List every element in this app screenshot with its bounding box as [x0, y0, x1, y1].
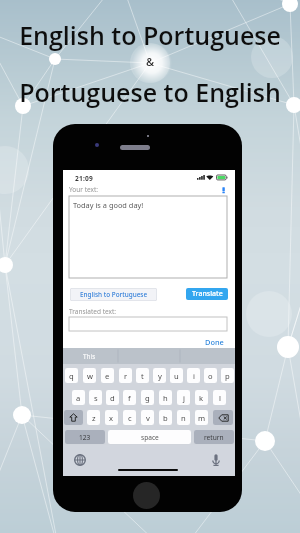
staticText: c [128, 413, 132, 423]
staticText: i [193, 371, 195, 381]
button[interactable]: Today is a good day! [69, 196, 227, 278]
button[interactable]: n [177, 410, 190, 425]
staticText: s [94, 393, 98, 403]
staticText: Portuguese to English [0, 75, 300, 109]
button[interactable]: Translate [186, 288, 228, 300]
button[interactable] [69, 317, 227, 331]
button[interactable]: English to Portuguese [70, 288, 157, 301]
staticText: This [83, 352, 96, 361]
button[interactable]: a [72, 390, 85, 405]
staticText: English to Portuguese [0, 18, 300, 52]
staticText: t [141, 371, 144, 381]
button[interactable]: s [89, 390, 102, 405]
staticText: q [69, 371, 74, 381]
staticText: z [92, 413, 96, 423]
button[interactable]: c [123, 410, 136, 425]
staticText: b [163, 413, 168, 423]
staticText: f [128, 393, 131, 403]
button[interactable]: j [177, 390, 190, 405]
button[interactable]: e [101, 368, 114, 383]
staticText: p [225, 371, 230, 381]
staticText: space [141, 433, 159, 442]
staticText: & [0, 54, 300, 69]
staticText: Translated text: [69, 307, 117, 316]
button[interactable]: d [106, 390, 119, 405]
staticText: g [145, 393, 150, 403]
staticText: 21:09 [75, 174, 93, 183]
staticText: Translate [192, 289, 223, 299]
button[interactable]: Change keyboard [74, 454, 86, 466]
staticText: e [105, 371, 110, 381]
staticText: k [199, 393, 204, 403]
staticText: n [181, 413, 186, 423]
button[interactable]: Done [203, 336, 226, 348]
staticText: y [158, 371, 162, 381]
staticText: 123 [79, 433, 91, 442]
button[interactable]: return [194, 430, 234, 444]
staticText: Done [205, 337, 224, 347]
button[interactable]: Backspace [213, 410, 233, 425]
button[interactable]: z [87, 410, 100, 425]
staticText: English to Portuguese [80, 290, 148, 299]
staticText: Today is a good day! [73, 200, 144, 210]
button[interactable]: q [65, 368, 78, 383]
staticText: r [124, 371, 128, 381]
button[interactable]: x [105, 410, 118, 425]
button[interactable]: g [141, 390, 154, 405]
button[interactable]: k [195, 390, 208, 405]
button[interactable]: i [187, 368, 200, 383]
staticText: m [198, 413, 206, 423]
button[interactable]: v [141, 410, 154, 425]
button[interactable]: u [170, 368, 183, 383]
staticText: j [183, 393, 185, 403]
button[interactable]: t [136, 368, 149, 383]
button[interactable]: p [221, 368, 234, 383]
staticText: w [87, 371, 93, 381]
button[interactable]: h [159, 390, 172, 405]
staticText: u [174, 371, 179, 381]
button[interactable]: f [123, 390, 136, 405]
button[interactable]: Dictate [212, 454, 220, 466]
button[interactable]: w [83, 368, 96, 383]
button[interactable]: o [204, 368, 217, 383]
staticText: a [76, 393, 81, 403]
staticText: l [219, 393, 221, 403]
button[interactable]: r [119, 368, 132, 383]
staticText: x [109, 413, 114, 423]
button[interactable]: l [213, 390, 226, 405]
button[interactable]: Shift [64, 410, 83, 425]
button[interactable]: b [159, 410, 172, 425]
button[interactable]: m [195, 410, 208, 425]
staticText: o [208, 371, 213, 381]
staticText: v [146, 413, 150, 423]
staticText: h [163, 393, 168, 403]
staticText: Your text: [69, 185, 99, 194]
button[interactable]: space [108, 430, 191, 444]
button[interactable]: y [153, 368, 166, 383]
button[interactable]: 123 [65, 430, 105, 444]
staticText: return [204, 433, 224, 442]
staticText: d [110, 393, 115, 403]
